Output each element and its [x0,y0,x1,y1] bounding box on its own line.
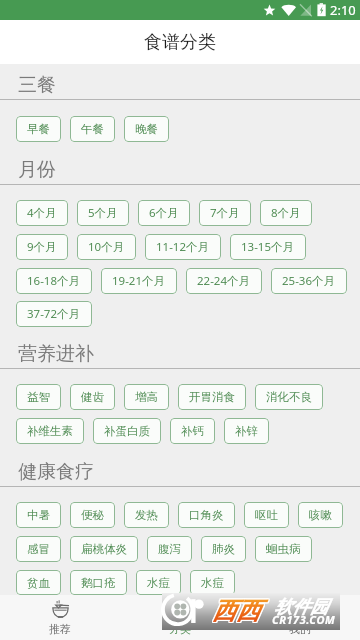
staticText: 我的 [289,622,311,636]
staticText: 蛔虫病 [266,542,301,556]
staticText: 西西 [211,597,259,627]
button[interactable]: 11-12个月 [145,234,221,260]
staticText: 9个月 [27,239,57,255]
staticText: 食谱分类 [144,31,216,54]
button[interactable]: 扁桃体炎 [70,536,138,562]
button[interactable]: 补蛋白质 [93,418,161,444]
button[interactable]: 水痘 [136,570,181,595]
button[interactable]: 早餐 [16,116,61,142]
staticText: 感冒 [27,542,50,556]
staticText: 22-24个月 [197,273,251,289]
staticText: 西西 [213,595,261,625]
staticText: 西西 [211,595,259,625]
staticText: 肺炎 [212,542,235,556]
button[interactable]: 呕吐 [244,502,289,528]
button[interactable]: 6个月 [138,200,190,226]
staticText: 补蛋白质 [104,424,150,438]
staticText: 健齿 [81,390,104,404]
staticText: 分类 [169,622,191,636]
button[interactable]: 开胃消食 [178,384,246,410]
staticText: 2:10 [330,1,356,19]
button[interactable]: 8个月 [260,200,312,226]
button[interactable]: 腹泻 [147,536,192,562]
staticText: 7个月 [210,205,240,221]
staticText: 西西 [213,596,261,626]
button[interactable]: 感冒 [16,536,61,562]
staticText: CR173.COM [272,612,336,627]
button[interactable]: 37-72个月 [16,301,92,327]
button[interactable]: 补锌 [224,418,269,444]
button[interactable]: 消化不良 [255,384,323,410]
button[interactable]: 我的 [240,595,360,640]
button[interactable]: 贫血 [16,570,61,595]
button[interactable]: 肺炎 [201,536,246,562]
staticText: 37-72个月 [27,306,81,322]
staticText: 6个月 [149,205,179,221]
button[interactable]: 晚餐 [124,116,169,142]
staticText: 西西 [212,596,260,626]
button[interactable]: 4个月 [16,200,68,226]
staticText: 早餐 [27,122,50,136]
staticText: 增高 [135,390,158,404]
staticText: 补钙 [181,424,204,438]
button[interactable]: 7个月 [199,200,251,226]
staticText: 鹅口疮 [81,576,116,590]
button[interactable]: 9个月 [16,234,68,260]
staticText: 水痘 [147,576,170,590]
button[interactable]: 补维生素 [16,418,84,444]
button[interactable]: 益智 [16,384,61,410]
staticText: 补维生素 [27,424,73,438]
button[interactable]: 10个月 [77,234,136,260]
button[interactable]: 蛔虫病 [255,536,312,562]
staticText: 13-15个月 [241,239,295,255]
staticText: 软件园 [274,596,328,619]
staticText: 西西 [212,597,260,627]
staticText: 月份 [18,158,56,182]
button[interactable]: 增高 [124,384,169,410]
button[interactable]: 健齿 [70,384,115,410]
staticText: 西西 [213,597,261,627]
staticText: 发热 [135,508,158,522]
button[interactable]: 13-15个月 [230,234,306,260]
staticText: 25-36个月 [282,273,336,289]
staticText: 16-18个月 [27,273,81,289]
staticText: 便秘 [81,508,104,522]
staticText: 口角炎 [189,508,224,522]
staticText: 推荐 [49,622,71,636]
staticText: 5个月 [88,205,118,221]
staticText: 扁桃体炎 [81,542,127,556]
staticText: 补锌 [235,424,258,438]
button[interactable]: 咳嗽 [298,502,343,528]
button[interactable]: 25-36个月 [271,268,347,294]
staticText: 益智 [27,390,50,404]
button[interactable]: 补钙 [170,418,215,444]
button[interactable]: 分类 [120,595,240,640]
staticText: 水痘 [201,576,224,590]
button[interactable]: 水痘 [190,570,235,595]
staticText: 开胃消食 [189,390,235,404]
button[interactable]: 午餐 [70,116,115,142]
staticText: 西西 [212,595,260,625]
button[interactable]: 发热 [124,502,169,528]
staticText: 4个月 [27,205,57,221]
staticText: 午餐 [81,122,104,136]
button[interactable]: 鹅口疮 [70,570,127,595]
staticText: 11-12个月 [156,239,210,255]
staticText: 咳嗽 [309,508,332,522]
staticText: 10个月 [88,239,125,255]
button[interactable]: 口角炎 [178,502,235,528]
button[interactable]: 中暑 [16,502,61,528]
button[interactable]: 16-18个月 [16,268,92,294]
button[interactable]: 便秘 [70,502,115,528]
staticText: 中暑 [27,508,50,522]
staticText: 贫血 [27,576,50,590]
button[interactable]: 推荐 [0,595,120,640]
staticText: 消化不良 [266,390,312,404]
staticText: 营养进补 [18,342,94,366]
button[interactable]: 19-21个月 [101,268,177,294]
staticText: 腹泻 [158,542,181,556]
button[interactable]: 22-24个月 [186,268,262,294]
staticText: 三餐 [18,73,56,97]
staticText: 健康食疗 [18,460,94,484]
button[interactable]: 5个月 [77,200,129,226]
